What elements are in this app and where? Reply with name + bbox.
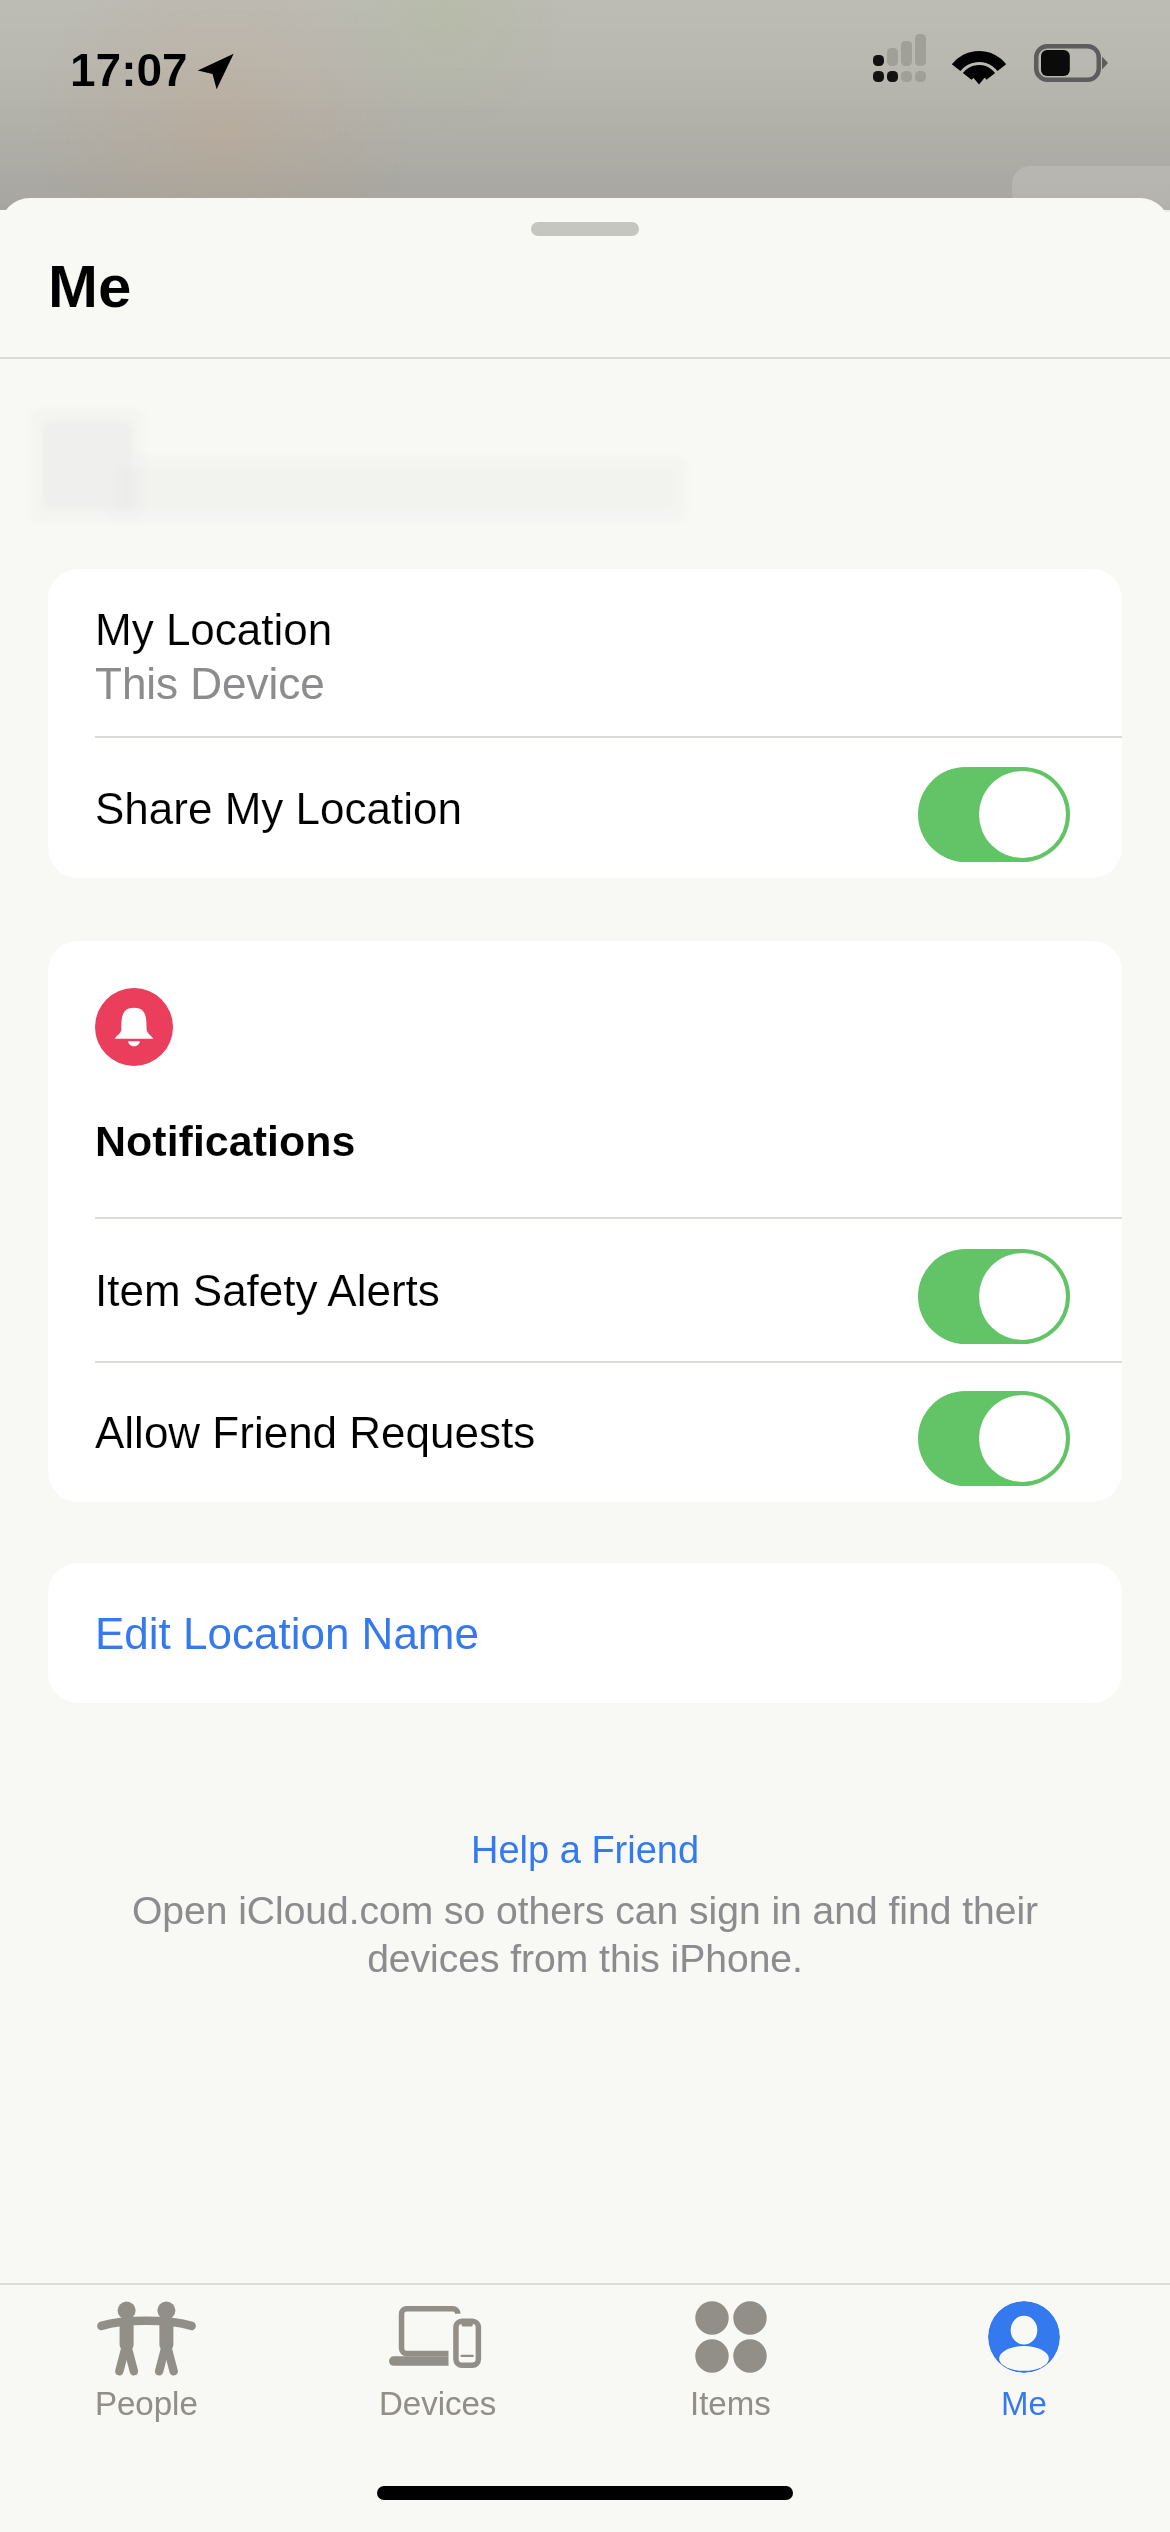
staticText: This Device [95,659,325,708]
button[interactable]: Help a Friend [455,1821,716,1879]
staticText: My Location [95,605,333,654]
other: Toggle [918,761,1070,856]
staticText: Allow Friend Requests [95,1408,536,1457]
staticText: Item Safety Alerts [95,1266,440,1315]
staticText: Share My Location [95,784,462,833]
staticText: Open iCloud.com so others can sign in an… [130,1889,1040,1981]
staticText: Notifications [95,1117,356,1165]
other: Toggle [918,1385,1070,1480]
staticText: Help a Friend [471,1829,700,1871]
button[interactable]: Me [877,2285,1170,2422]
button[interactable]: Allow Friend Requests [48,1363,1122,1502]
button[interactable]: Item Safety Alerts [48,1219,1122,1361]
staticText: Devices [379,2385,497,2422]
staticText: Edit Location Name [95,1609,479,1658]
staticText: 17:07 [70,44,188,95]
staticText: People [95,2385,198,2422]
button[interactable]: Share My Location [48,738,1122,878]
staticText: Me [48,253,132,320]
button[interactable]: Items [584,2285,877,2422]
staticText: Items [690,2385,771,2422]
button[interactable]: People [0,2285,292,2422]
staticText: Me [1001,2385,1047,2422]
button[interactable]: Edit Location Name [48,1563,1122,1703]
button[interactable]: Devices [292,2285,584,2422]
other: Toggle [918,1243,1070,1338]
